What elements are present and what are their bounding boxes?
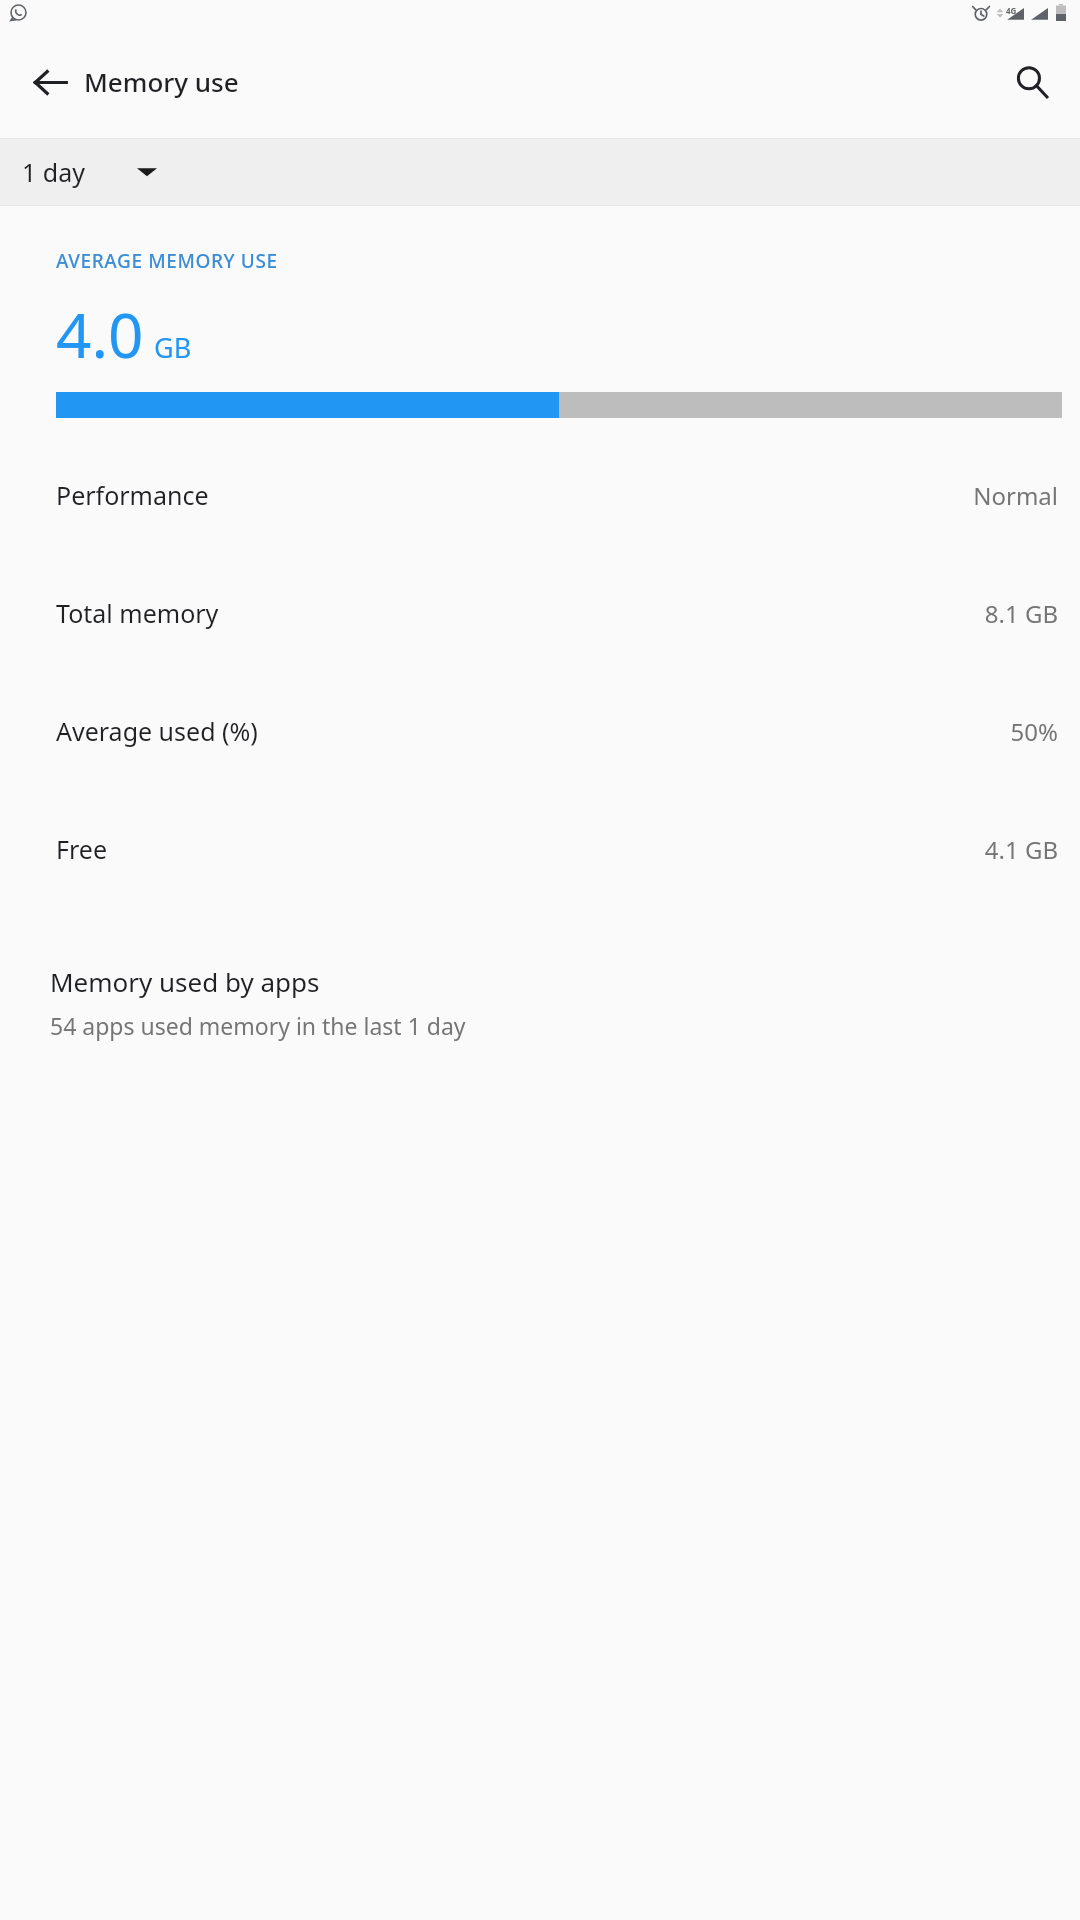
staticText: Memory use	[84, 64, 239, 99]
button[interactable]: Free	[0, 790, 1080, 908]
staticText: Free	[56, 832, 108, 866]
button[interactable]: 1 day	[0, 139, 1080, 205]
staticText: GB	[154, 329, 192, 366]
button[interactable]: Search	[1002, 52, 1062, 112]
staticText: 4.0	[56, 292, 144, 376]
staticText: 4.1 GB	[984, 833, 1058, 866]
staticText: Average used (%)	[56, 714, 258, 748]
staticText: 54 apps used memory in the last 1 day	[50, 1010, 466, 1041]
staticText: AVERAGE MEMORY USE	[56, 248, 278, 274]
staticText: 4G	[1006, 5, 1017, 16]
button[interactable]: Total memory	[0, 554, 1080, 672]
button[interactable]: Performance	[0, 436, 1080, 554]
button[interactable]: Memory used by apps	[0, 964, 1080, 1041]
staticText: Performance	[56, 478, 209, 512]
staticText: 1 day	[22, 155, 85, 189]
staticText: 8.1 GB	[984, 597, 1058, 630]
staticText: Memory used by apps	[50, 964, 320, 999]
staticText: 50%	[1010, 715, 1058, 748]
button[interactable]: Average used (%)	[0, 672, 1080, 790]
staticText: Normal	[973, 479, 1058, 512]
staticText: Total memory	[56, 596, 219, 630]
button[interactable]: Back	[22, 54, 78, 110]
